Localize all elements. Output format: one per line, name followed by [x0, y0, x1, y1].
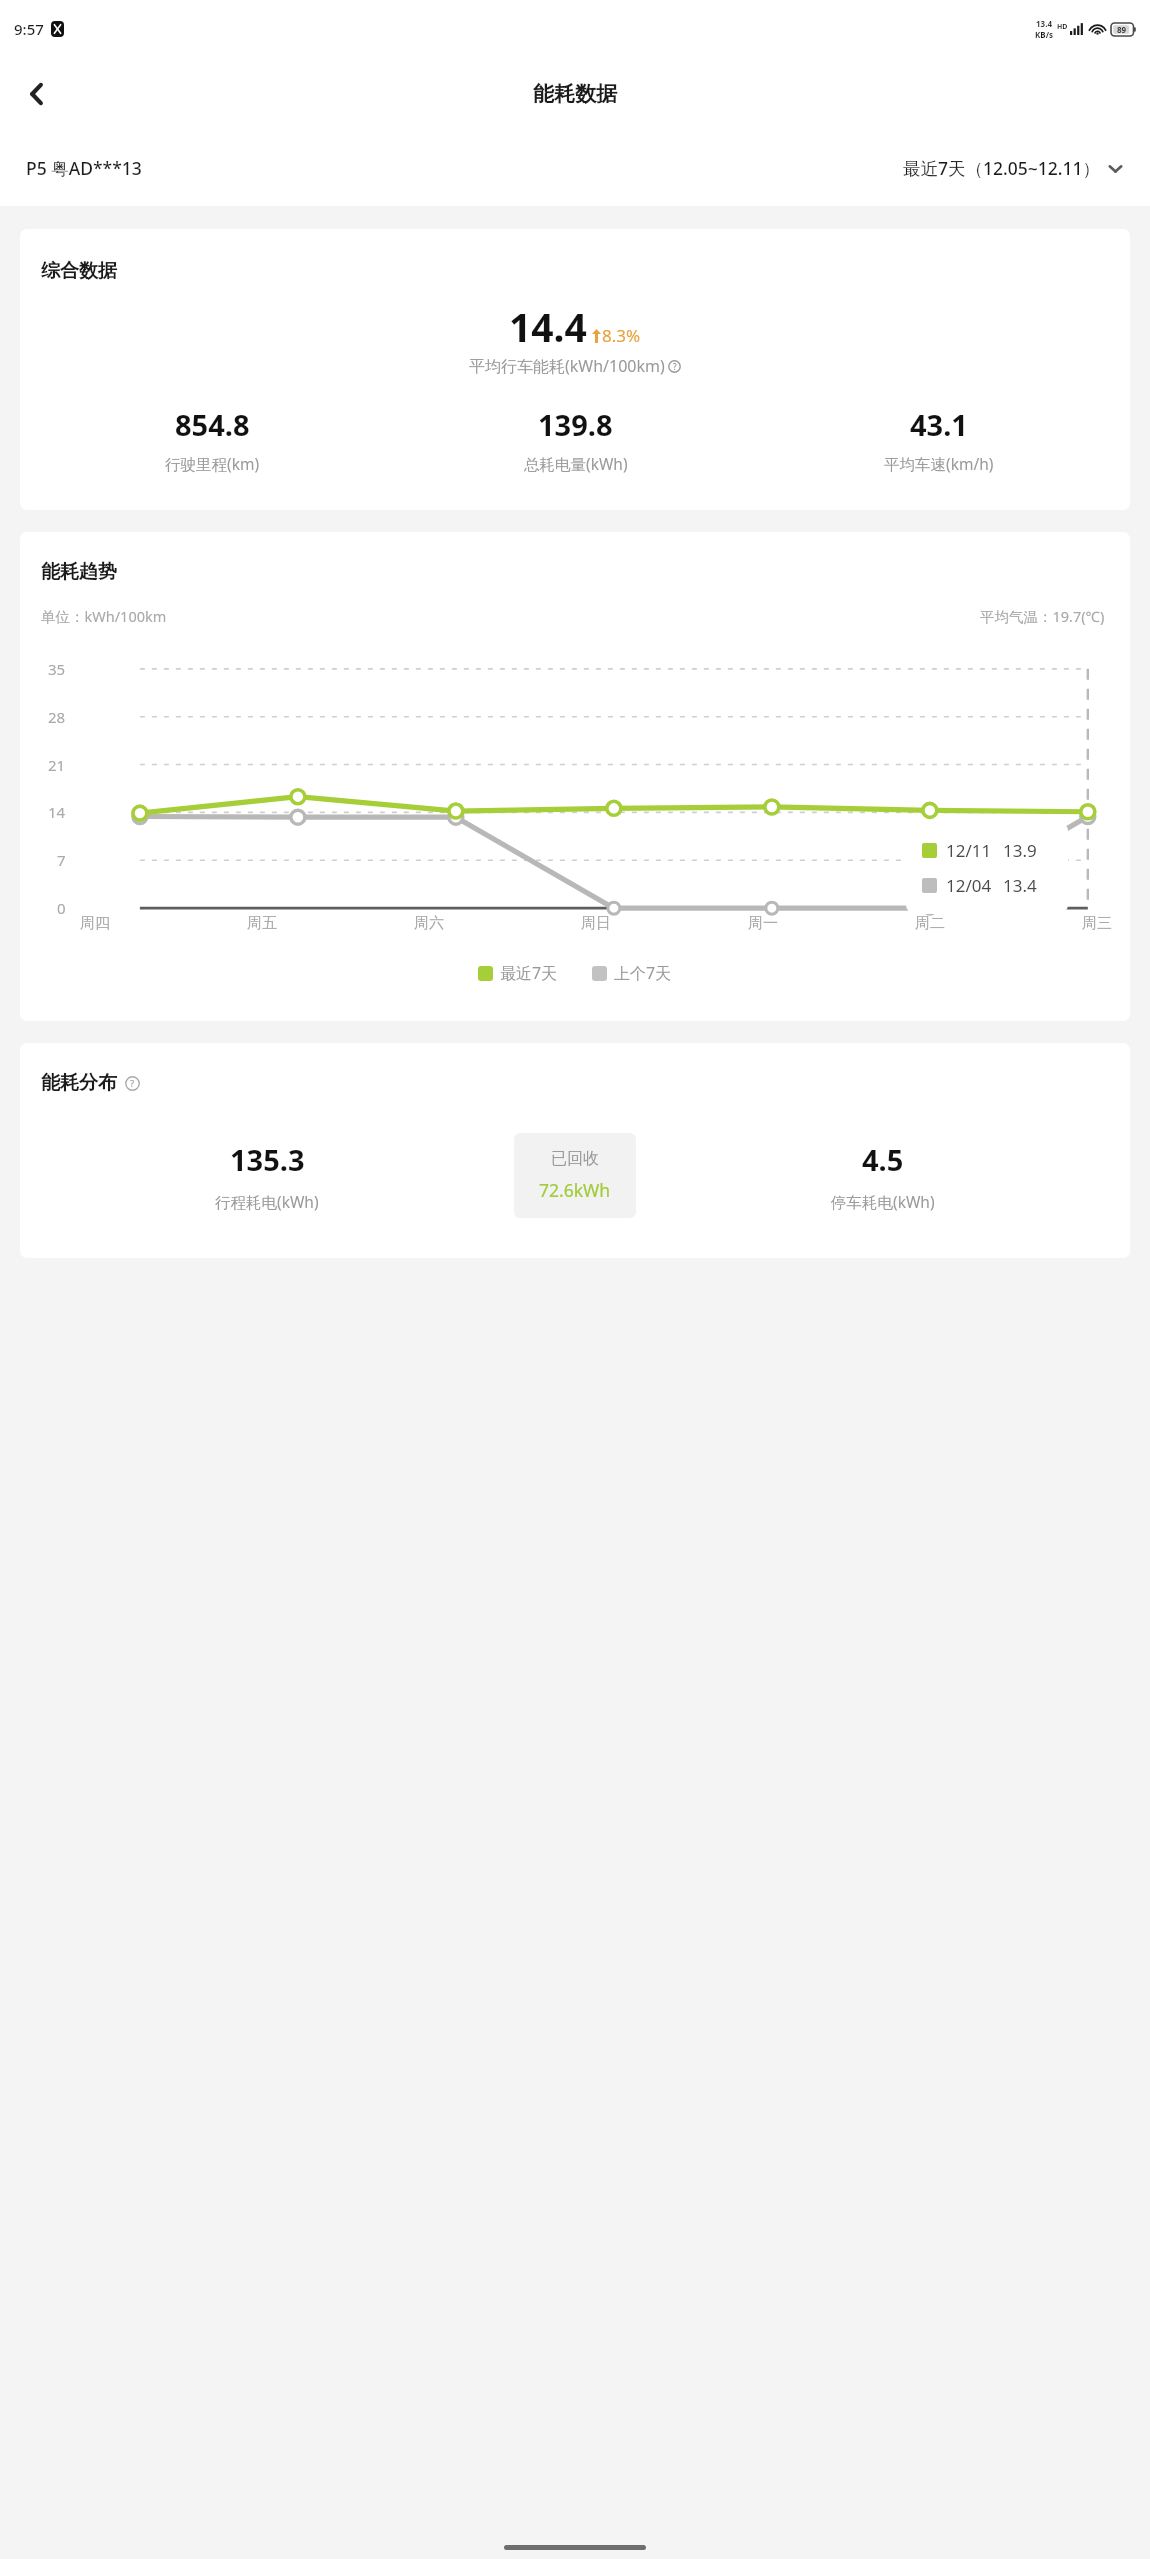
staticText: 12/04 — [946, 874, 992, 897]
staticText: ? — [130, 1077, 135, 1090]
staticText: 平均车速(km/h) — [884, 453, 994, 474]
button[interactable]: 43.1 — [757, 405, 1120, 474]
staticText: 周日 — [581, 914, 611, 933]
staticText: 0 — [57, 898, 66, 918]
staticText: 35 — [48, 659, 66, 679]
staticText: 13.9 — [1003, 839, 1037, 862]
staticText: 行驶里程(km) — [165, 453, 260, 474]
staticText: 平均行车能耗(kWh/100km) — [469, 355, 665, 377]
staticText: 89 — [1117, 24, 1127, 35]
staticText: 周二 — [915, 914, 945, 933]
staticText: 7 — [57, 850, 66, 870]
staticText: 135.3 — [230, 1140, 305, 1179]
staticText: 周六 — [414, 914, 444, 933]
staticText: 平均气温：19.7(℃) — [980, 606, 1105, 626]
staticText: 周三 — [1082, 914, 1112, 933]
staticText: P5 粤AD***13 — [26, 156, 142, 180]
staticText: 周一 — [748, 914, 778, 933]
staticText: 能耗趋势 — [41, 560, 117, 584]
staticText: 综合数据 — [41, 259, 117, 283]
staticText: 21 — [48, 755, 66, 775]
staticText: 周四 — [80, 914, 110, 933]
button[interactable]: 139.8 — [394, 405, 757, 474]
staticText: 854.8 — [175, 405, 250, 444]
staticText: 28 — [48, 707, 66, 727]
button[interactable]: 854.8 — [30, 405, 394, 474]
staticText: 4.5 — [862, 1140, 904, 1179]
staticText: 14.4 — [509, 300, 587, 353]
staticText: 72.6kWh — [539, 1178, 611, 1202]
staticText: 14 — [48, 802, 66, 822]
staticText: 能耗数据 — [533, 81, 617, 107]
staticText: 13.4 — [1003, 874, 1037, 897]
button[interactable]: 上个7天 — [588, 958, 676, 988]
staticText: 上个7天 — [614, 962, 672, 984]
staticText: 139.8 — [538, 405, 613, 444]
staticText: 行程耗电(kWh) — [215, 1191, 319, 1212]
staticText: 8.3% — [602, 324, 641, 347]
staticText: 最近7天（12.05~12.11） — [903, 156, 1101, 180]
staticText: 周五 — [247, 914, 277, 933]
staticText: 9:57 — [14, 19, 44, 39]
staticText: 43.1 — [910, 405, 968, 444]
button[interactable]: 4.5 — [636, 1140, 1130, 1212]
button[interactable]: 135.3 — [20, 1140, 514, 1212]
staticText: HD — [1057, 22, 1068, 32]
staticText: KB/s — [1035, 29, 1053, 40]
staticText: 单位：kWh/100km — [41, 606, 167, 626]
staticText: 已回收 — [551, 1149, 599, 1169]
staticText: 13.4 — [1036, 18, 1052, 29]
button[interactable]: 最近7天（12.05~12.11） — [903, 150, 1124, 186]
staticText: 12/11 — [946, 839, 992, 862]
button[interactable]: P5 粤AD***13 — [26, 150, 142, 186]
staticText: 能耗分布 — [41, 1071, 117, 1095]
staticText: 最近7天 — [500, 962, 558, 984]
staticText: 停车耗电(kWh) — [831, 1191, 935, 1212]
button[interactable]: Back — [10, 67, 64, 121]
staticText: 总耗电量(kWh) — [524, 453, 628, 474]
button[interactable]: 最近7天 — [474, 958, 562, 988]
staticText: ? — [673, 361, 677, 372]
